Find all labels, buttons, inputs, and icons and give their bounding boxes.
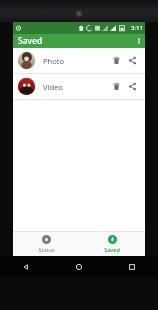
button[interactable]: More options	[133, 34, 145, 48]
staticText: Video	[43, 82, 108, 92]
button[interactable]: Delete	[108, 48, 124, 73]
button[interactable]: Share	[124, 48, 140, 73]
button[interactable]: Saved	[79, 232, 145, 256]
button[interactable]: Recents	[105, 256, 158, 278]
button[interactable]: Back	[0, 256, 52, 278]
button[interactable]: Status	[13, 232, 79, 256]
staticText: Saved	[18, 35, 43, 47]
button[interactable]: Share	[124, 74, 140, 99]
staticText: Saved	[104, 246, 120, 253]
staticText: Photo	[43, 56, 108, 66]
button[interactable]: Video	[13, 74, 145, 99]
button[interactable]: Home	[52, 256, 105, 278]
button[interactable]: Photo	[13, 48, 145, 73]
staticText: 3:11	[131, 24, 143, 32]
staticText: Status	[38, 246, 55, 253]
button[interactable]: Delete	[108, 74, 124, 99]
